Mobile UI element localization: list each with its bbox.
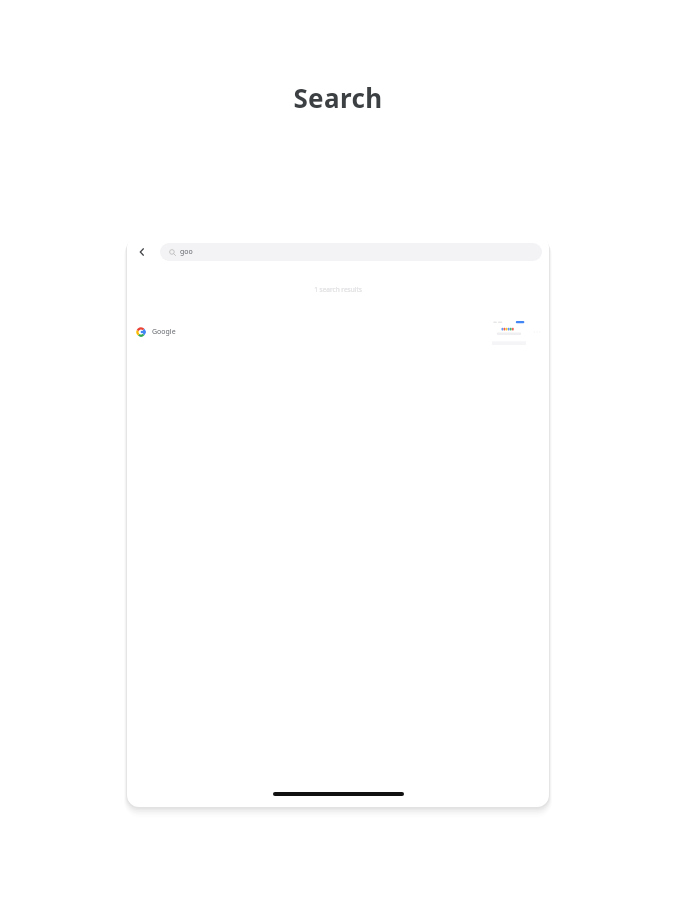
button[interactable]: Back [132, 242, 152, 262]
button[interactable]: Google [127, 311, 549, 353]
staticText: 1 search results [314, 285, 362, 294]
staticText: Search [293, 80, 383, 115]
staticText: Google [152, 327, 176, 337]
button[interactable]: goo [160, 243, 542, 261]
staticText: goo [180, 247, 193, 257]
